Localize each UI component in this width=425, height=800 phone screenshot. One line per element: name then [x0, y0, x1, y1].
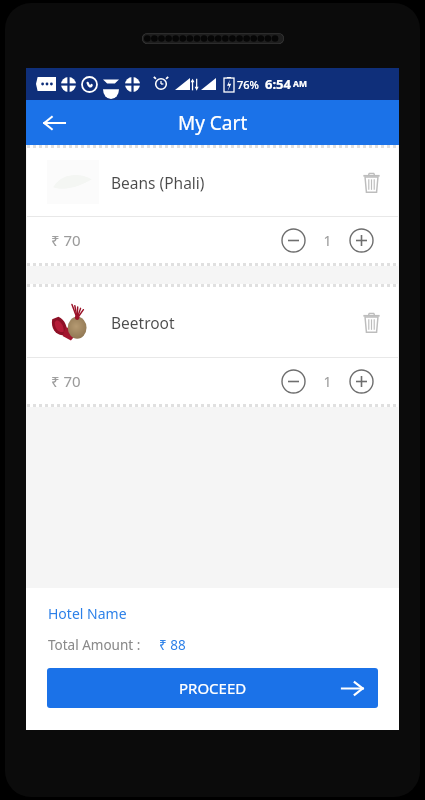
button[interactable]: Back — [34, 103, 74, 143]
staticText: 1 — [323, 372, 332, 391]
staticText: ₹ 70 — [51, 371, 81, 391]
staticText: Beetroot — [111, 312, 350, 333]
staticText: My Cart — [178, 110, 248, 136]
staticText: ₹ 70 — [51, 230, 81, 250]
button[interactable]: Beetroot — [27, 287, 398, 357]
staticText: 6:54 — [265, 75, 291, 93]
button[interactable]: Beans (Phali) — [27, 148, 398, 216]
staticText: Beans (Phali) — [111, 172, 350, 193]
button[interactable]: Decrease quantity — [276, 223, 310, 257]
staticText: 1 — [323, 231, 332, 250]
staticText: AM — [293, 78, 307, 90]
staticText: Hotel Name — [48, 604, 127, 623]
staticText: ₹ 88 — [159, 636, 186, 654]
button[interactable]: Delete Beetroot — [350, 301, 392, 343]
button[interactable]: Decrease quantity — [276, 364, 310, 398]
staticText: 76% — [237, 77, 259, 92]
staticText: Total Amount : — [48, 636, 141, 654]
button[interactable]: Increase quantity — [344, 364, 378, 398]
button[interactable]: Increase quantity — [344, 223, 378, 257]
button[interactable]: Delete Beans (Phali) — [350, 161, 392, 203]
staticText: PROCEED — [179, 678, 247, 698]
button[interactable]: PROCEED — [47, 668, 378, 708]
